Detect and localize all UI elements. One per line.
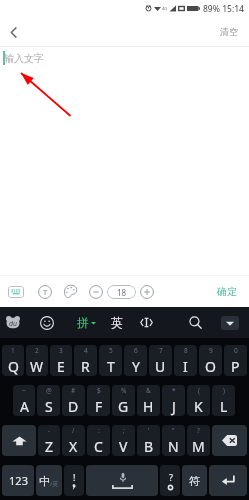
staticText: ) [223,386,225,395]
staticText: ; [123,426,125,435]
staticText: du [9,319,18,329]
button[interactable]: 确定 [209,276,245,307]
button[interactable]: Search [188,315,203,330]
button[interactable]: 英 [111,315,123,330]
staticText: 拼 [77,315,89,330]
staticText: J [172,397,176,416]
button[interactable]: Back [0,19,26,45]
staticText: 输入文字 [4,52,44,65]
button[interactable]: @ [37,385,60,416]
staticText: 1 [11,346,15,355]
button[interactable]: 8 [174,345,197,376]
button[interactable]: - [38,425,60,456]
staticText: 6 [134,346,138,355]
button[interactable]: Keyboard [8,286,24,298]
staticText: V [119,437,128,456]
button[interactable]: 5 [99,345,122,376]
staticText: M [192,437,205,456]
button[interactable]: 123 [2,465,34,496]
button[interactable]: 9 [199,345,222,376]
staticText: " [172,426,175,435]
button[interactable]: Input method [6,316,20,329]
button[interactable]: : [87,425,110,456]
staticText: ( [198,386,200,395]
button[interactable]: 2 [26,345,48,376]
staticText: F [95,397,103,416]
staticText: 英 [111,315,123,330]
staticText: E [57,357,65,376]
button[interactable]: Hide keyboard [221,316,239,330]
button[interactable]: Color [63,284,78,299]
staticText: 中 [39,474,50,488]
button[interactable]: Space [86,465,158,496]
button[interactable]: 4 [74,345,97,376]
button[interactable]: Backspace [212,425,247,456]
staticText: ! [73,471,76,483]
staticText: @ [46,386,52,395]
staticText: & [146,386,151,395]
button[interactable]: ( [187,385,210,416]
staticText: / [72,426,75,435]
staticText: 清空 [220,26,238,37]
staticText: % [121,386,127,395]
button[interactable]: " [162,425,185,456]
staticText: 2 [35,346,39,355]
button[interactable]: 18 [107,285,136,299]
button[interactable]: % [112,385,135,416]
staticText: P [231,357,240,376]
staticText: 123 [9,473,28,488]
staticText: Z [45,437,54,456]
button[interactable]: ? [160,465,180,496]
staticText: R [81,357,90,376]
button[interactable]: # [62,385,85,416]
staticText: $ [97,386,101,395]
button[interactable]: Decrease size [89,285,103,299]
button[interactable]: Shift [2,425,36,456]
staticText: L [220,397,228,416]
button[interactable]: 清空 [209,17,249,46]
button[interactable]: 7 [149,345,172,376]
staticText: D [68,397,79,416]
staticText: S [45,397,53,416]
button[interactable]: ) [212,385,235,416]
button[interactable]: & [137,385,160,416]
button[interactable]: ' [137,425,160,456]
staticText: 7 [159,346,163,355]
staticText: ? [169,471,173,483]
button[interactable]: ~ [13,385,35,416]
button[interactable]: 1 [2,345,24,376]
button[interactable]: $ [87,385,110,416]
button[interactable]: Emoji [40,316,54,330]
button[interactable]: 6 [124,345,147,376]
staticText: 0 [234,346,238,355]
staticText: 18 [117,287,127,298]
button[interactable]: 符 [182,465,207,496]
button[interactable]: ? [187,425,210,456]
button[interactable]: Text style [38,285,52,299]
button[interactable]: 3 [50,345,72,376]
button[interactable]: ! [64,465,84,496]
staticText: G [118,397,129,416]
button[interactable]: ; [112,425,135,456]
staticText: H [143,397,154,416]
staticText: B [144,437,154,456]
staticText: O [205,357,216,376]
button[interactable]: 0 [224,345,247,376]
staticText: 3 [59,346,63,355]
staticText: X [69,437,78,456]
staticText: W [30,357,44,376]
staticText: T [43,287,48,297]
button[interactable]: 拼 [77,315,96,330]
staticText: 5 [109,346,113,355]
staticText: T [107,357,115,376]
button[interactable]: Increase size [140,285,154,299]
button[interactable]: Enter [209,465,247,496]
button[interactable]: 中 [36,465,62,496]
button[interactable]: Cursor move [139,315,154,330]
staticText: I [183,357,188,376]
staticText: C [94,437,103,456]
staticText: K [194,397,203,416]
staticText: * [172,386,176,395]
button[interactable]: / [62,425,85,456]
button[interactable]: * [162,385,185,416]
